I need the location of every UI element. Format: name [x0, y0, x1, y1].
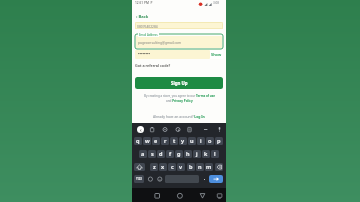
staticText: b — [189, 163, 193, 171]
button[interactable]: l — [211, 150, 219, 158]
button[interactable]: Already have an account? Log In — [132, 114, 226, 119]
staticText: 08076402284 — [137, 24, 158, 28]
staticText: g — [177, 150, 181, 158]
staticText: d — [159, 150, 163, 158]
staticText: s — [151, 150, 154, 158]
staticText: z — [153, 163, 156, 171]
button[interactable]: v — [177, 163, 185, 171]
button[interactable]: d — [157, 150, 165, 158]
staticText: Sign Up — [171, 80, 188, 86]
staticText: v — [179, 163, 183, 171]
button[interactable]: s — [148, 150, 156, 158]
staticText: r — [164, 137, 167, 145]
staticText: l — [214, 150, 216, 158]
button[interactable]: 08076402284 — [135, 22, 223, 29]
staticText: •••••••• — [138, 51, 151, 56]
button[interactable]: r — [161, 137, 169, 145]
staticText: By creating a store, you agree to our Te… — [144, 94, 215, 98]
staticText: Email Address — [139, 33, 158, 37]
staticText: t — [173, 137, 176, 145]
button[interactable]: f — [166, 150, 174, 158]
button[interactable] — [134, 163, 145, 171]
staticText: Got a referral code? — [135, 63, 171, 68]
button[interactable]: pageconsulting@gmail.com — [135, 34, 223, 49]
button[interactable]: i — [197, 137, 205, 145]
staticText: h — [186, 150, 190, 158]
staticText: w — [145, 137, 150, 145]
button[interactable]: h — [184, 150, 192, 158]
staticText: Show — [211, 52, 222, 57]
button[interactable]: y — [179, 137, 187, 145]
staticText: ‹ — [140, 127, 142, 133]
button[interactable]: •••••••• — [135, 50, 223, 59]
staticText: 12:51 PM P — [135, 1, 153, 5]
button[interactable]: j — [193, 150, 201, 158]
button[interactable]: x — [159, 163, 167, 171]
button[interactable]: c — [168, 163, 176, 171]
button[interactable]: n — [196, 163, 204, 171]
staticText: q — [136, 137, 140, 145]
staticText: ?123 — [136, 177, 142, 181]
staticText: i — [200, 137, 202, 145]
button[interactable]: t — [170, 137, 178, 145]
staticText: . — [204, 175, 206, 181]
staticText: c — [171, 163, 174, 171]
button[interactable] — [215, 163, 223, 171]
staticText: u — [190, 137, 194, 145]
staticText: 3:08 — [213, 1, 219, 5]
button[interactable]: b — [187, 163, 195, 171]
button[interactable]: p — [215, 137, 223, 145]
staticText: y — [181, 137, 185, 145]
staticText: f — [169, 150, 172, 158]
button[interactable]: w — [143, 137, 151, 145]
staticText: j — [196, 150, 198, 158]
staticText: and Privacy Policy — [166, 99, 193, 103]
button[interactable] — [209, 175, 223, 183]
button[interactable]: z — [150, 163, 158, 171]
staticText: o — [208, 137, 212, 145]
staticText: m — [206, 163, 212, 171]
button[interactable]: u — [188, 137, 196, 145]
button[interactable]: Sign Up — [135, 77, 223, 89]
staticText: pageconsulting@gmail.com — [138, 40, 182, 44]
staticText: a — [141, 150, 145, 158]
button[interactable]: ‹ — [137, 126, 144, 133]
staticText: ‹ Back — [136, 14, 149, 20]
button[interactable]: a — [139, 150, 147, 158]
button[interactable]: e — [152, 137, 160, 145]
button[interactable]: m — [205, 163, 213, 171]
staticText: p — [217, 137, 221, 145]
staticText: x — [161, 163, 165, 171]
staticText: k — [204, 150, 208, 158]
button[interactable]: ‹ Back — [136, 14, 152, 20]
button[interactable]: g — [175, 150, 183, 158]
staticText: e — [154, 137, 158, 145]
button[interactable]: o — [206, 137, 214, 145]
staticText: Already have an account? Log In — [153, 114, 205, 119]
staticText: n — [198, 163, 202, 171]
button[interactable]: q — [134, 137, 142, 145]
button[interactable]: ?123 — [134, 175, 144, 183]
button[interactable]: k — [202, 150, 210, 158]
